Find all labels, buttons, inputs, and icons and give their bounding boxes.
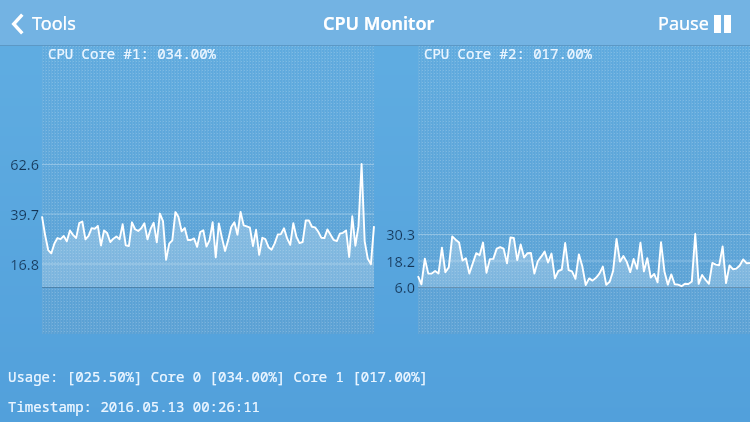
- staticText: 62.6: [10, 154, 39, 174]
- staticText: Pause: [658, 11, 709, 36]
- staticText: Usage: [025.50%] Core 0 [034.00%] Core 1…: [8, 367, 428, 386]
- staticText: CPU Monitor: [323, 11, 435, 36]
- staticText: 16.8: [10, 254, 39, 274]
- staticText: Tools: [32, 11, 76, 36]
- staticText: 6.0: [394, 277, 415, 297]
- staticText: 39.7: [10, 204, 39, 224]
- other: Back to Tools: [12, 13, 24, 35]
- button[interactable]: Back to Tools: [0, 7, 86, 40]
- staticText: CPU Core #2: 017.00%: [424, 44, 592, 63]
- staticText: 30.3: [386, 224, 415, 244]
- staticText: 18.2: [386, 251, 415, 271]
- staticText: CPU Core #1: 034.00%: [48, 44, 216, 63]
- button[interactable]: Pause: [646, 6, 750, 41]
- staticText: Timestamp: 2016.05.13 00:26:11: [8, 397, 260, 416]
